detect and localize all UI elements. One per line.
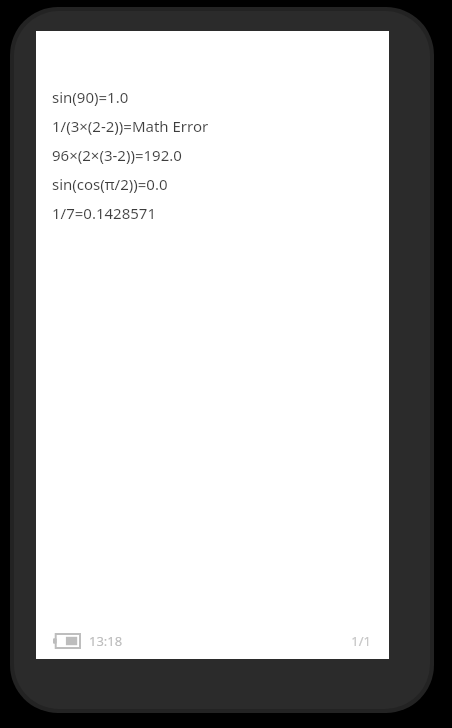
staticText: 1/1 — [351, 632, 371, 650]
staticText: 1/7=0.1428571 — [52, 203, 156, 223]
staticText: 1/(3×(2-2))=Math Error — [52, 116, 209, 136]
other: Battery level — [53, 634, 80, 648]
staticText: sin(cos(π/2))=0.0 — [52, 174, 168, 194]
button[interactable]: sin(cos(π/2))=0.0 — [52, 169, 389, 198]
staticText: 96×(2×(3-2))=192.0 — [52, 145, 182, 165]
button[interactable]: 1/(3×(2-2))=Math Error — [52, 111, 389, 140]
staticText: 13:18 — [89, 632, 123, 650]
button[interactable]: 96×(2×(3-2))=192.0 — [52, 140, 389, 169]
staticText: sin(90)=1.0 — [52, 87, 129, 107]
button[interactable]: sin(90)=1.0 — [52, 82, 389, 111]
button[interactable]: 1/7=0.1428571 — [52, 198, 389, 227]
